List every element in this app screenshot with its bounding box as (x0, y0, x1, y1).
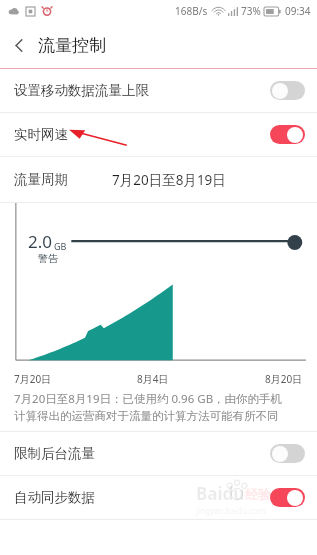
staticText: 自动同步数据 (14, 489, 95, 506)
staticText: GB (54, 240, 67, 252)
staticText: 经验 (245, 486, 271, 502)
staticText: 8月4日 (137, 372, 169, 386)
button[interactable]: 实时网速 (0, 113, 317, 156)
button[interactable]: Off (270, 444, 305, 463)
staticText: 7月20日至8月19日 (112, 171, 226, 189)
staticText: 限制后台流量 (14, 445, 95, 462)
staticText: 流量周期 (14, 171, 68, 188)
staticText: 设置移动数据流量上限 (14, 82, 149, 99)
button[interactable]: 限制后台流量 (0, 432, 317, 475)
staticText: 7月20日至8月19日：已使用约 0.96 GB，由你的手机 (14, 391, 283, 407)
staticText: 警告 (38, 252, 58, 265)
staticText: jingyan.baidu.com (196, 505, 266, 516)
button[interactable]: 自动同步数据 (0, 476, 317, 519)
staticText: 流量控制 (38, 35, 106, 56)
button[interactable]: Off (270, 81, 305, 100)
staticText: Baidu (196, 482, 245, 505)
staticText: 7月20日 (14, 372, 52, 386)
staticText: 实时网速 (14, 126, 68, 143)
staticText: 计算得出的运营商对于流量的计算方法可能有所不同 (14, 409, 279, 423)
staticText: 168B/s (175, 4, 208, 18)
button[interactable]: On (270, 488, 305, 507)
staticText: 2.0 (28, 230, 53, 253)
button[interactable]: On (270, 125, 305, 144)
button[interactable]: 设置移动数据流量上限 (0, 69, 317, 112)
button[interactable]: 流量周期 (0, 157, 317, 202)
staticText: 73% (241, 4, 261, 18)
staticText: 09:34 (285, 4, 311, 18)
staticText: 8月20日 (265, 372, 303, 386)
button[interactable]: Back (0, 26, 38, 64)
